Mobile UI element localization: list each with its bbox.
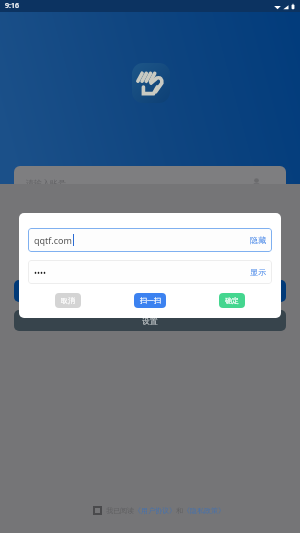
button[interactable]: 我已阅读	[93, 506, 225, 515]
staticText: 确定	[225, 296, 239, 305]
staticText: 《用户协议》	[134, 506, 176, 515]
staticText: qqtf.com	[34, 234, 72, 246]
button[interactable]: 确定	[219, 293, 245, 308]
button[interactable]: 扫一扫	[134, 293, 166, 308]
button[interactable]: 设置	[14, 310, 286, 331]
staticText: 我已阅读	[106, 506, 134, 515]
button[interactable]: ••••	[28, 260, 272, 284]
button[interactable]: 请输入密码	[26, 201, 274, 235]
staticText: 取消	[61, 296, 75, 305]
button[interactable]: 登录	[14, 280, 286, 302]
button[interactable]: qqtf.com	[28, 228, 272, 252]
staticText: ••••	[34, 267, 47, 278]
staticText: 扫一扫	[140, 296, 161, 305]
staticText: 9:16	[5, 1, 19, 11]
button[interactable]: 取消	[55, 293, 81, 308]
button[interactable]: 显示	[250, 267, 266, 277]
button[interactable]: 隐藏	[250, 235, 266, 245]
staticText: 和	[176, 506, 183, 515]
staticText: 设置	[142, 316, 158, 326]
other: Account	[252, 178, 261, 187]
button[interactable]: 请输入账号	[26, 166, 274, 200]
staticText: 《隐私政策》	[183, 506, 225, 515]
staticText: 请输入账号	[26, 178, 66, 188]
staticText: 登录	[141, 286, 159, 297]
